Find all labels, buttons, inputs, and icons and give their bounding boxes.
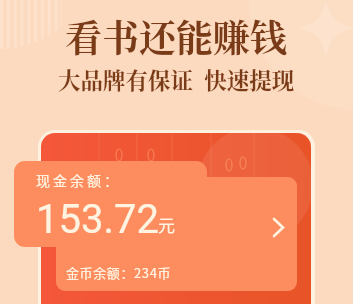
staticText: 元 [158,212,175,237]
staticText: 大品牌有保证 快速提现 [58,63,295,95]
staticText: 金币余额：234币 [66,263,172,282]
staticText: 153.72 [36,196,159,243]
button[interactable]: 现金余额： [14,161,207,247]
staticText: 看书还能赚钱 [65,9,287,62]
button[interactable] [56,177,297,291]
staticText: 现金余额： [36,170,121,190]
button[interactable]: Withdraw cash [264,213,292,241]
